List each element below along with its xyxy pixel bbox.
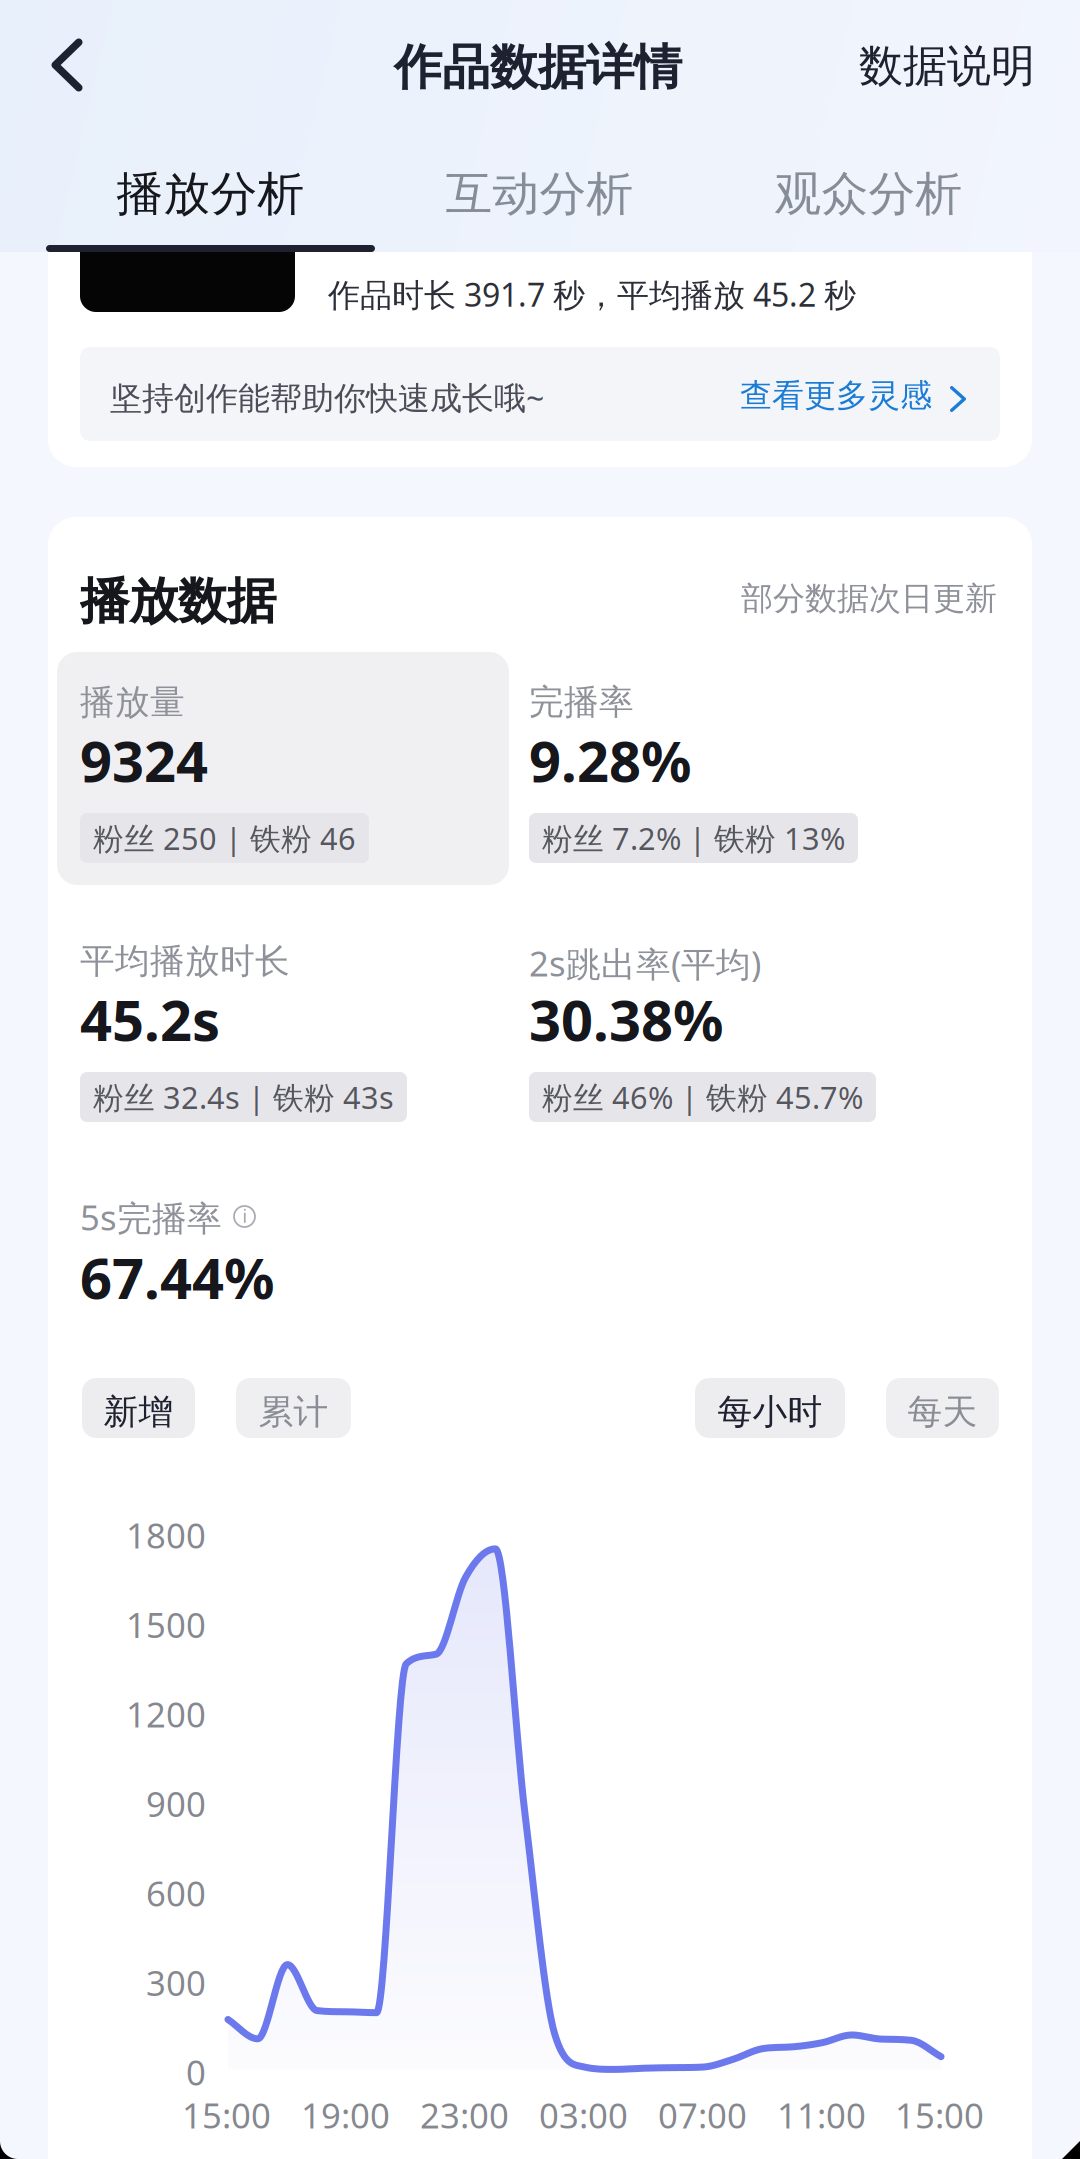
staticText: 观众分析 [774, 165, 962, 223]
staticText: 1800 [126, 1512, 206, 1558]
button[interactable]: 互动分析 [375, 130, 704, 252]
staticText: 9.28% [529, 723, 692, 797]
staticText: 23:00 [420, 2092, 509, 2138]
staticText: 每小时 [717, 1391, 822, 1433]
staticText: 粉丝 32.4s | 铁粉 43s [93, 1077, 394, 1117]
staticText: 9324 [80, 723, 208, 797]
staticText: 累计 [258, 1391, 328, 1433]
button[interactable]: 观众分析 [704, 130, 1033, 252]
staticText: 1500 [126, 1601, 206, 1647]
staticText: 03:00 [539, 2092, 628, 2138]
staticText: 坚持创作能帮助你快速成长哦~ [110, 376, 544, 418]
staticText: 互动分析 [445, 165, 633, 223]
button[interactable]: 新增 [82, 1378, 195, 1438]
staticText: 作品数据详情 [394, 38, 682, 97]
staticText: 5s完播率 [80, 1194, 222, 1240]
button[interactable]: 播放分析 [46, 130, 375, 252]
staticText: 300 [146, 1959, 206, 2005]
staticText: 粉丝 46% | 铁粉 45.7% [542, 1077, 863, 1117]
button[interactable]: 坚持创作能帮助你快速成长哦~ [80, 347, 1000, 441]
staticText: 完播率 [529, 681, 634, 724]
staticText: 粉丝 7.2% | 铁粉 13% [542, 818, 845, 858]
staticText: 部分数据次日更新 [741, 579, 997, 618]
button[interactable]: 返回 [17, 10, 117, 120]
staticText: 播放数据 [80, 571, 276, 632]
staticText: 45.2s [80, 982, 220, 1056]
staticText: 新增 [103, 1391, 173, 1433]
staticText: 2s跳出率(平均) [529, 940, 761, 986]
staticText: 15:00 [182, 2092, 271, 2138]
staticText: 每天 [907, 1391, 977, 1433]
staticText: i [242, 1204, 246, 1227]
staticText: 作品时长 391.7 秒，平均播放 45.2 秒 [328, 273, 856, 315]
staticText: 播放量 [80, 681, 185, 724]
staticText: 平均播放时长 [80, 940, 290, 983]
button[interactable]: 数据说明 [835, 21, 1035, 111]
staticText: 600 [146, 1870, 206, 1916]
staticText: 30.38% [529, 982, 724, 1056]
staticText: 67.44% [80, 1240, 275, 1314]
button[interactable]: 累计 [236, 1378, 351, 1438]
staticText: 07:00 [658, 2092, 747, 2138]
staticText: 19:00 [301, 2092, 390, 2138]
staticText: 数据说明 [859, 39, 1035, 93]
staticText: 查看更多灵感 [740, 376, 932, 415]
staticText: 播放分析 [116, 165, 304, 223]
staticText: 15:00 [895, 2092, 984, 2138]
staticText: 粉丝 250 | 铁粉 46 [93, 818, 356, 858]
staticText: 1200 [126, 1691, 206, 1737]
staticText: 0 [186, 2049, 206, 2095]
button[interactable]: 每天 [886, 1378, 999, 1438]
staticText: 11:00 [777, 2092, 866, 2138]
staticText: 900 [146, 1780, 206, 1826]
button[interactable]: 每小时 [695, 1378, 845, 1438]
